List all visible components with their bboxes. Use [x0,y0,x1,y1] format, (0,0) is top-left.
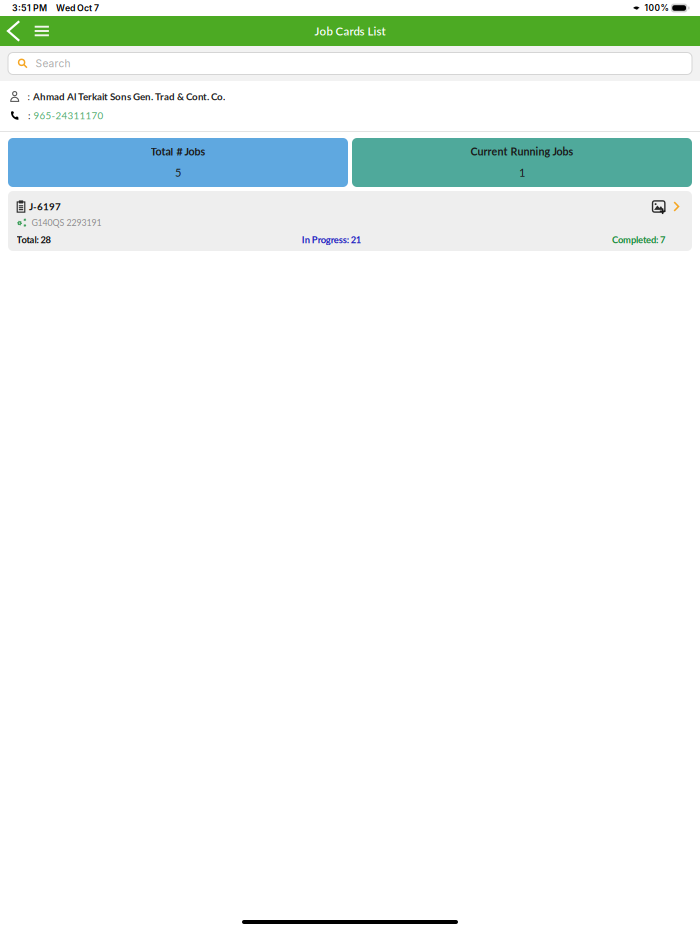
button[interactable]: Current Running Jobs [352,138,692,187]
staticText: Ahmad Al Terkait Sons Gen. Trad & Cont. … [33,91,225,102]
staticText: 100% [644,3,668,13]
staticText: Total: 28 [16,234,50,245]
staticText: Current Running Jobs [470,145,573,158]
button[interactable]: Add photo [652,199,666,213]
button[interactable]: Open job [666,199,692,214]
staticText: Job Cards List [314,24,385,38]
staticText: 3:51 PM [12,3,47,13]
staticText: G140QS 2293191 [31,217,101,228]
staticText: 965-24311170 [33,110,103,121]
button[interactable]: Back [0,16,28,46]
button[interactable]: 965-24311170 [30,107,103,124]
staticText: In Progress: 21 [302,234,361,245]
button[interactable]: J-6197 [8,191,692,251]
staticText: Search [35,57,70,70]
button[interactable]: Total # Jobs [8,138,348,187]
staticText: : [27,91,29,102]
staticText: : [28,110,30,121]
button[interactable]: Menu [28,16,56,46]
button[interactable]: Search [0,46,700,81]
staticText: 1 [519,166,525,179]
staticText: Wed Oct 7 [56,3,99,13]
staticText: Total # Jobs [150,145,205,158]
staticText: J-6197 [29,201,61,212]
staticText: Completed: 7 [612,234,665,245]
staticText: 5 [175,166,181,179]
